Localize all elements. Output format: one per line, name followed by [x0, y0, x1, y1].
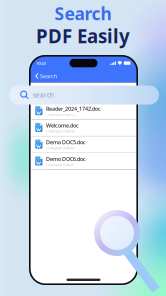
staticText: 11/4/2024 3:48:01	[46, 163, 75, 167]
button[interactable]: Search	[31, 70, 62, 83]
staticText: Demo DOC6.doc	[46, 155, 86, 162]
staticText: PDF Easily	[36, 23, 130, 48]
staticText: Search	[54, 2, 111, 25]
button[interactable]: Demo DOC6.doc	[31, 153, 136, 170]
button[interactable]: Reader_2024_1742.doc	[31, 103, 136, 119]
button[interactable]: Welcome.doc	[31, 119, 136, 136]
staticText: 11/4/2024 3:48:12	[46, 113, 75, 116]
staticText: Reader_2024_1742.doc	[46, 105, 101, 112]
staticText: 11/4/2024 3:48:03	[46, 146, 75, 150]
staticText: Demo DOC5.doc	[46, 139, 86, 146]
button[interactable]: Demo DOC5.doc	[31, 136, 136, 153]
staticText: Search	[40, 73, 57, 80]
staticText: Welcome.doc	[46, 122, 79, 129]
button[interactable]: search	[9, 85, 159, 104]
staticText: 10:23	[37, 60, 46, 66]
staticText: 11/4/2024 3:48:05	[46, 130, 75, 133]
staticText: search	[33, 91, 54, 99]
